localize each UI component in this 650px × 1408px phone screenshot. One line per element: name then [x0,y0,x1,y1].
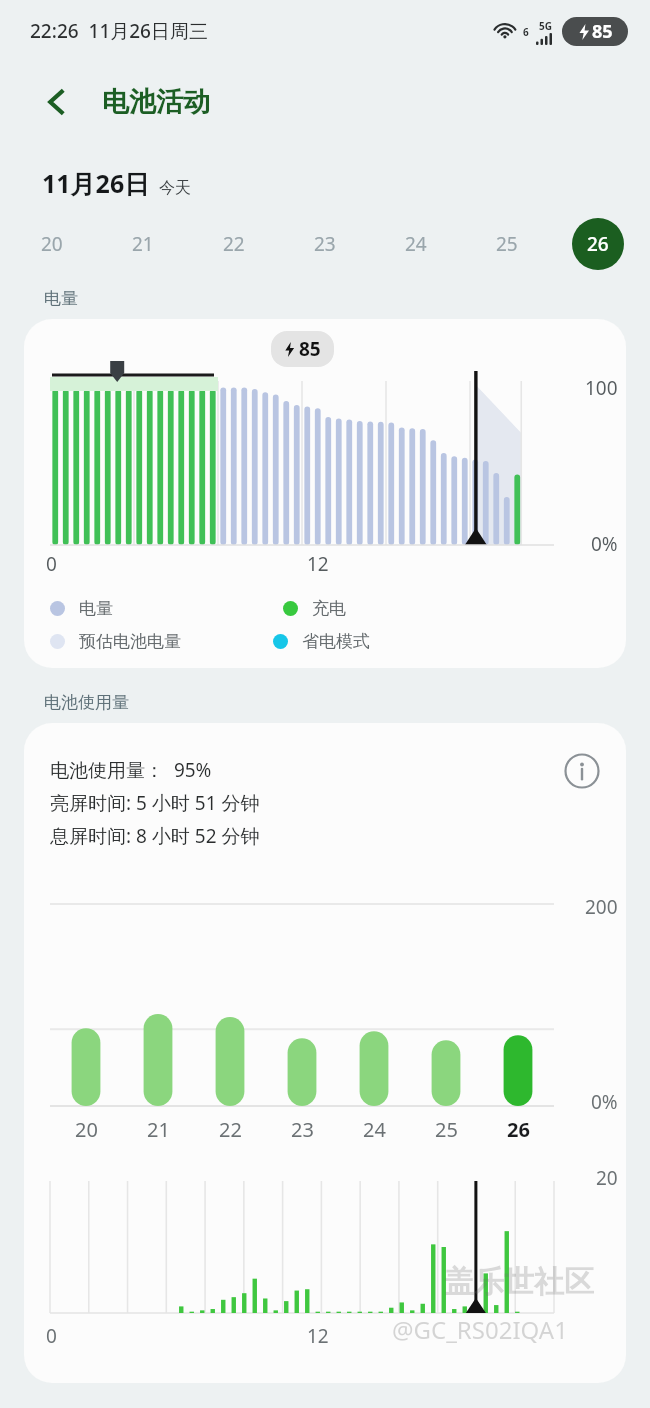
staticText: 12 [307,551,329,577]
staticText: 22 [223,231,245,257]
staticText: 24 [363,1116,386,1143]
button[interactable]: Back [34,79,80,125]
staticText: 0 [46,551,57,577]
button[interactable]: 24 [390,218,442,270]
button[interactable]: 25 [481,218,533,270]
staticText: 0 [46,1323,57,1349]
staticText: 22:26 11月26日周三 [30,18,208,44]
staticText: 电量 [44,288,78,309]
button[interactable]: 电池使用量： 95% [24,723,626,1383]
button[interactable]: 21 [117,218,169,270]
staticText: 100 [585,375,618,401]
staticText: 0% [591,531,618,557]
staticText: 23 [291,1116,314,1143]
staticText: 电池使用量 [44,692,129,713]
staticText: 电池使用量： 95% [50,757,212,783]
staticText: 23 [314,231,336,257]
staticText: 电池活动 [102,85,210,119]
staticText: 6 [523,25,529,39]
staticText: 息屏时间: 8 小时 52 分钟 [50,823,260,849]
staticText: 22 [219,1116,242,1143]
staticText: 5G [539,19,552,33]
staticText: 充电 [312,598,346,619]
staticText: 26 [507,1116,530,1143]
staticText: 12 [307,1323,329,1349]
staticText: 24 [405,231,427,257]
staticText: 20 [596,1165,618,1191]
staticText: 25 [435,1116,458,1143]
staticText: 20 [75,1116,98,1143]
staticText: 盖乐世社区 [444,1263,594,1301]
staticText: 0% [591,1089,618,1115]
staticText: 今天 [159,178,191,198]
staticText: 85 [592,19,613,44]
staticText: 预估电池电量 [79,631,181,652]
button[interactable]: 85 [24,319,626,668]
staticText: 21 [132,231,154,257]
staticText: 电量 [79,598,113,619]
staticText: 11月26日 [42,166,150,200]
staticText: 亮屏时间: 5 小时 51 分钟 [50,790,260,816]
button[interactable]: 20 [26,218,78,270]
button[interactable]: 23 [299,218,351,270]
staticText: 20 [41,231,63,257]
staticText: 85 [299,336,321,362]
button[interactable]: 26 [572,218,624,270]
staticText: 26 [587,231,609,257]
button[interactable]: 22 [208,218,260,270]
staticText: 200 [585,894,618,920]
button[interactable]: Info [562,751,602,791]
staticText: 21 [147,1116,170,1143]
staticText: 25 [496,231,518,257]
staticText: @GC_RS02IQA1 [392,1313,568,1346]
staticText: 省电模式 [302,631,370,652]
